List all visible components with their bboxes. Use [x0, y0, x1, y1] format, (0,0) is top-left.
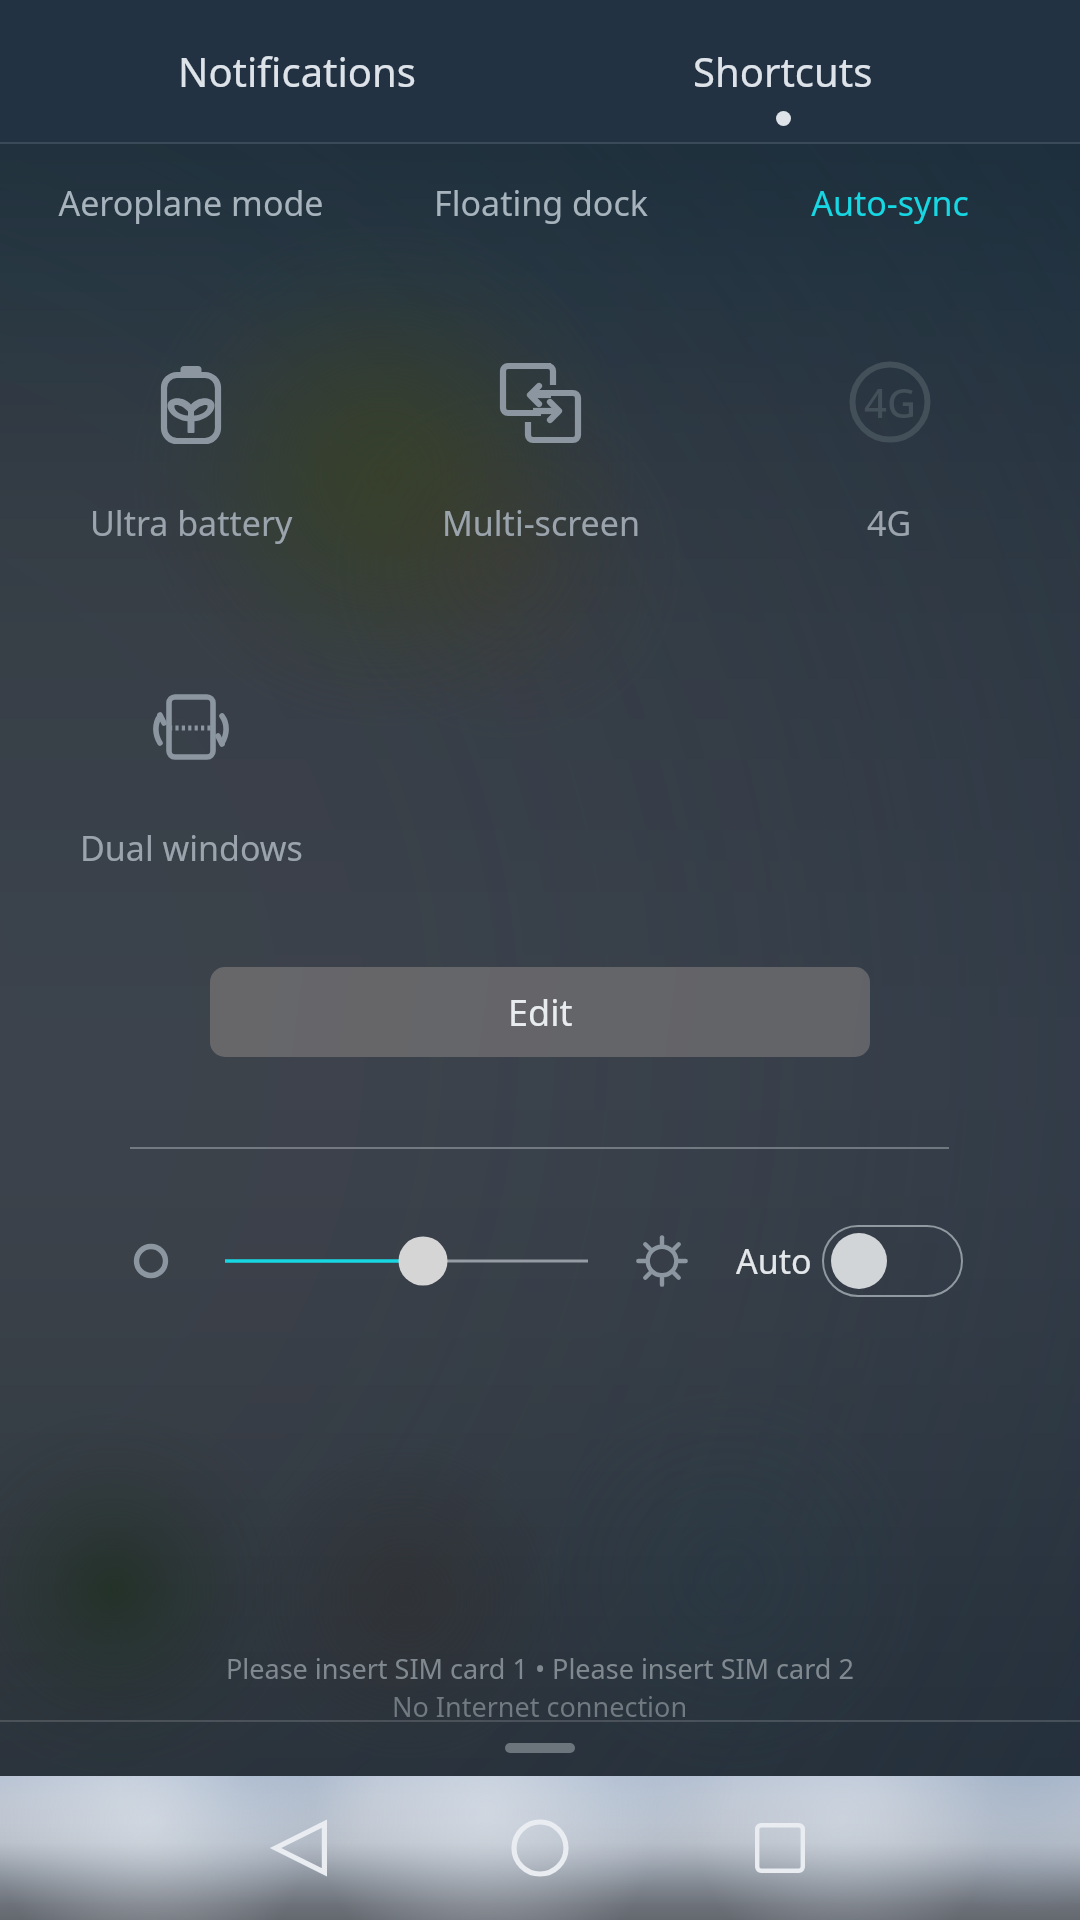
- staticText: 4G: [864, 375, 916, 429]
- button[interactable]: Dual windows: [16, 679, 366, 909]
- staticText: Ultra battery: [90, 500, 293, 546]
- button[interactable]: Auto-sync: [715, 144, 1064, 262]
- staticText: Multi-screen: [442, 500, 640, 546]
- button[interactable]: Back: [228, 1776, 372, 1920]
- button[interactable]: Ultra battery: [16, 354, 366, 584]
- button[interactable]: Recents: [708, 1776, 852, 1920]
- button[interactable]: 4G: [715, 354, 1064, 584]
- staticText: No Internet connection: [392, 1688, 688, 1725]
- staticText: Aeroplane mode: [58, 180, 324, 226]
- button[interactable]: Aeroplane mode: [16, 144, 366, 262]
- staticText: Auto-sync: [811, 180, 969, 226]
- button[interactable]: Edit: [210, 967, 870, 1057]
- staticText: Dual windows: [80, 825, 303, 871]
- staticText: 4G: [867, 500, 912, 546]
- staticText: Please insert SIM card 1 • Please insert…: [226, 1650, 854, 1687]
- staticText: Edit: [508, 988, 573, 1037]
- staticText: Notifications: [178, 44, 416, 98]
- button[interactable]: Floating dock: [366, 144, 715, 262]
- button[interactable]: Auto brightness toggle: [822, 1225, 963, 1297]
- button[interactable]: Shortcuts: [540, 0, 1080, 144]
- button[interactable]: Notifications: [0, 0, 540, 144]
- staticText: Auto: [736, 1238, 812, 1284]
- staticText: Floating dock: [434, 180, 648, 226]
- button[interactable]: Minimum brightness: [128, 1238, 174, 1284]
- button[interactable]: Multi-screen: [366, 354, 715, 584]
- button[interactable]: Home: [468, 1776, 612, 1920]
- button[interactable]: Maximum brightness: [636, 1235, 688, 1287]
- staticText: Shortcuts: [693, 44, 873, 98]
